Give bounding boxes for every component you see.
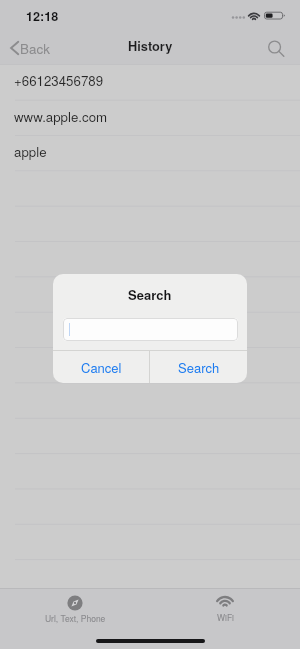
button[interactable] (0, 559, 300, 594)
button[interactable] (0, 276, 300, 311)
button[interactable] (0, 241, 300, 276)
button[interactable] (0, 347, 300, 382)
button[interactable]: apple (0, 135, 300, 170)
staticText: Search (178, 358, 220, 377)
staticText: Search (128, 285, 172, 304)
staticText: History (128, 37, 173, 55)
button[interactable] (0, 382, 300, 417)
button[interactable]: Cancel (53, 351, 149, 383)
button[interactable]: www.apple.com (0, 100, 300, 135)
button[interactable]: WiFi tab (175, 595, 275, 623)
staticText: 12:18 (26, 7, 59, 25)
button[interactable] (0, 312, 300, 347)
staticText: www.apple.com (14, 107, 108, 126)
staticText: apple (14, 142, 47, 161)
button[interactable]: +66123456789 (0, 64, 300, 99)
button[interactable]: Search (150, 351, 247, 383)
staticText: Cancel (81, 358, 122, 377)
staticText: +66123456789 (14, 71, 104, 90)
button[interactable]: Search (258, 32, 300, 64)
button[interactable]: Url, Text, Phone tab (25, 595, 125, 624)
staticText: WiFi (217, 611, 234, 623)
staticText: Url, Text, Phone (45, 612, 106, 624)
button[interactable]: Back (0, 32, 60, 64)
staticText: Back (20, 39, 50, 58)
